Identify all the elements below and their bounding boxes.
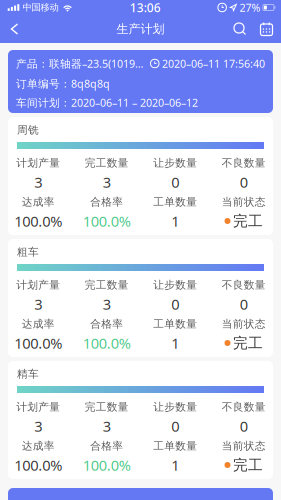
staticText: 2020–06–11 17:56:40 — [159, 56, 265, 71]
staticText: 达成率 — [22, 439, 55, 452]
staticText: 100.0% — [14, 211, 62, 231]
staticText: 100.0% — [14, 455, 62, 475]
staticText: 当前状态 — [222, 195, 266, 208]
staticText: 100.0% — [83, 333, 131, 353]
staticText: 精车 — [17, 367, 39, 380]
staticText: 3 — [103, 416, 111, 436]
staticText: 完工 — [233, 334, 263, 352]
staticText: 0 — [240, 294, 248, 314]
staticText: 不良数量 — [222, 278, 266, 291]
staticText: 工单数量 — [153, 317, 197, 330]
staticText: 3 — [103, 172, 111, 192]
staticText: 订单编号：8q8q8q — [16, 76, 110, 91]
staticText: 完工数量 — [85, 400, 129, 413]
staticText: 中国移动 — [22, 2, 58, 13]
staticText: 生产计划 — [116, 22, 164, 36]
staticText: 3 — [34, 416, 42, 436]
staticText: 完工数量 — [85, 156, 129, 169]
staticText: 3 — [34, 172, 42, 192]
staticText: 0 — [171, 416, 179, 436]
staticText: 3 — [103, 294, 111, 314]
staticText: 100.0% — [14, 333, 62, 353]
staticText: 3 — [34, 294, 42, 314]
staticText: 不良数量 — [222, 156, 266, 169]
staticText: 1 — [171, 211, 179, 231]
button[interactable]: Back — [3, 15, 26, 43]
button[interactable]: Calendar — [253, 15, 280, 43]
staticText: 0 — [240, 172, 248, 192]
staticText: 完工数量 — [85, 278, 129, 291]
staticText: 计划产量 — [16, 278, 60, 291]
button[interactable]: Search — [227, 15, 253, 43]
staticText: 1 — [171, 455, 179, 475]
staticText: 让步数量 — [153, 400, 197, 413]
staticText: 工单数量 — [153, 439, 197, 452]
staticText: 让步数量 — [153, 278, 197, 291]
button[interactable]: Action — [8, 488, 273, 500]
staticText: 工单数量 — [153, 195, 197, 208]
staticText: 13:06 — [130, 0, 161, 15]
staticText: 1 — [171, 333, 179, 353]
staticText: 100.0% — [83, 455, 131, 475]
staticText: 达成率 — [22, 195, 55, 208]
staticText: 完工 — [233, 212, 263, 230]
staticText: 不良数量 — [222, 400, 266, 413]
staticText: 0 — [171, 294, 179, 314]
staticText: 周铣 — [17, 123, 39, 136]
staticText: 合格率 — [90, 195, 123, 208]
staticText: 27% — [239, 0, 260, 15]
staticText: 完工 — [233, 456, 263, 474]
staticText: 合格率 — [90, 317, 123, 330]
staticText: 0 — [240, 416, 248, 436]
staticText: 当前状态 — [222, 317, 266, 330]
staticText: 粗车 — [17, 245, 39, 258]
staticText: 达成率 — [22, 317, 55, 330]
staticText: 合格率 — [90, 439, 123, 452]
staticText: 计划产量 — [16, 400, 60, 413]
staticText: 0 — [171, 172, 179, 192]
staticText: 100.0% — [83, 211, 131, 231]
staticText: 当前状态 — [222, 439, 266, 452]
staticText: 计划产量 — [16, 156, 60, 169]
staticText: 让步数量 — [153, 156, 197, 169]
staticText: 产品：联轴器–23.5(1019… — [16, 56, 143, 71]
staticText: 车间计划：2020–06–11 – 2020–06–12 — [16, 95, 198, 110]
